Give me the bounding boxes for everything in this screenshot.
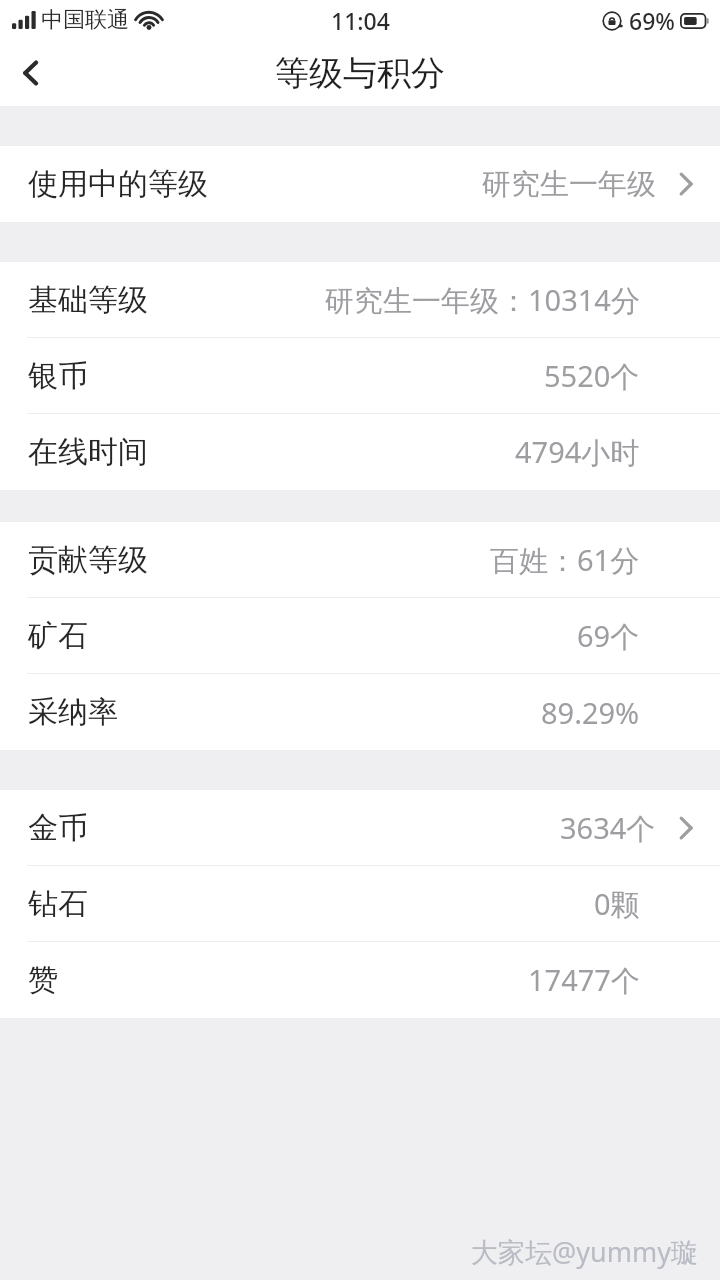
staticText: 贡献等级 <box>28 541 148 579</box>
button[interactable]: 金币 <box>0 790 720 866</box>
button[interactable]: 贡献等级 <box>0 522 720 598</box>
staticText: 钻石 <box>28 885 88 923</box>
staticText: 中国联通 <box>41 6 129 34</box>
button[interactable]: 基础等级 <box>0 262 720 338</box>
staticText: 3634个 <box>560 808 656 848</box>
staticText: 研究生一年级：10314分 <box>325 280 640 320</box>
button[interactable]: 银币 <box>0 338 720 414</box>
staticText: 使用中的等级 <box>28 165 208 203</box>
staticText: 银币 <box>28 357 88 395</box>
staticText: 11:04 <box>331 5 390 36</box>
button[interactable]: 矿石 <box>0 598 720 674</box>
staticText: 赞 <box>28 961 58 999</box>
button[interactable]: Back <box>0 40 66 106</box>
staticText: 5520个 <box>544 356 640 396</box>
staticText: 金币 <box>28 809 88 847</box>
staticText: 69% <box>629 5 675 36</box>
staticText: 在线时间 <box>28 433 148 471</box>
staticText: 17477个 <box>528 960 640 1000</box>
staticText: 0颗 <box>594 884 640 924</box>
button[interactable]: 赞 <box>0 942 720 1018</box>
staticText: 等级与积分 <box>275 52 445 95</box>
staticText: 百姓：61分 <box>490 540 640 580</box>
staticText: 基础等级 <box>28 281 148 319</box>
button[interactable]: 在线时间 <box>0 414 720 490</box>
staticText: 采纳率 <box>28 693 118 731</box>
staticText: 69个 <box>577 616 640 656</box>
button[interactable]: 采纳率 <box>0 674 720 750</box>
staticText: 矿石 <box>28 617 88 655</box>
staticText: 4794小时 <box>515 432 640 472</box>
button[interactable]: 钻石 <box>0 866 720 942</box>
staticText: 大家坛@yummy璇 <box>471 1233 698 1270</box>
button[interactable]: 使用中的等级 <box>0 146 720 222</box>
staticText: 89.29% <box>541 693 640 732</box>
staticText: 研究生一年级 <box>482 166 656 203</box>
